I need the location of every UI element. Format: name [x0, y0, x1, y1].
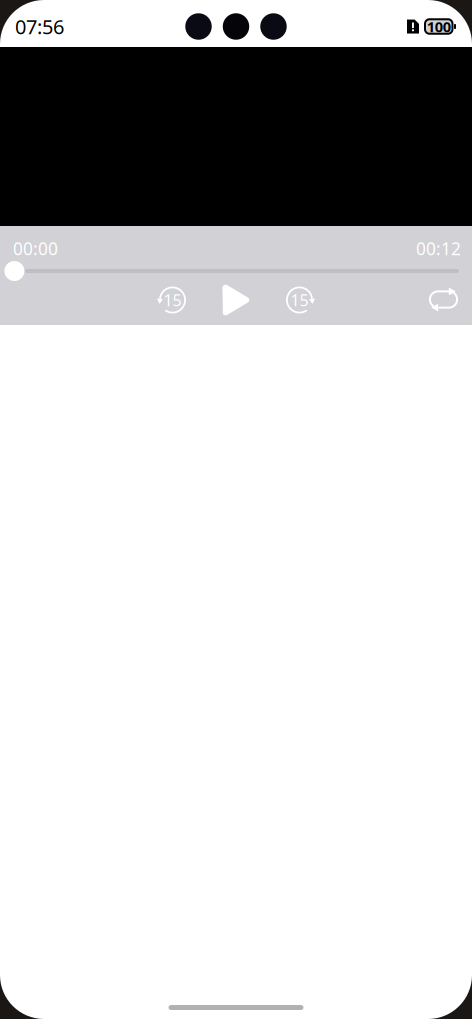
staticText: 00:12 [416, 237, 461, 260]
staticText: 15 [163, 289, 181, 311]
staticText: 15 [290, 289, 308, 311]
button[interactable]: Repeat [429, 288, 458, 312]
staticText: 07:56 [15, 13, 64, 40]
staticText: 100 [427, 17, 451, 36]
button[interactable]: Play [220, 283, 251, 317]
button[interactable]: Skip forward 15 seconds [285, 286, 313, 314]
staticText: 00:00 [13, 237, 58, 260]
button[interactable]: Skip back 15 seconds [158, 286, 186, 314]
